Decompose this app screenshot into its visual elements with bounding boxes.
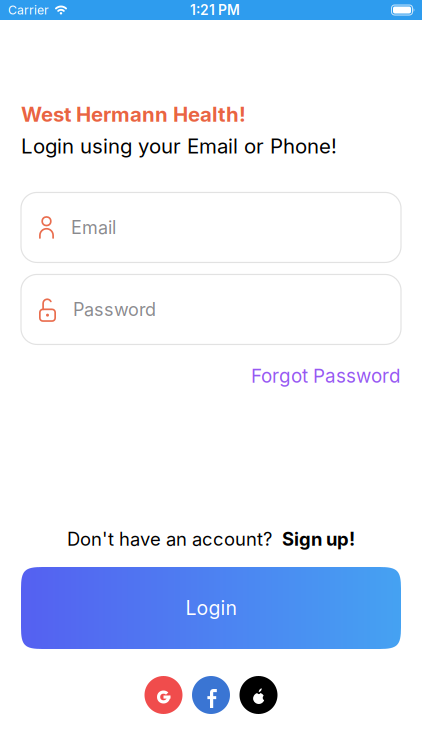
button[interactable]: Don't have an account? Sign up!	[67, 528, 355, 550]
staticText: West Hermann Health!	[21, 102, 246, 127]
staticText: Carrier	[8, 3, 49, 17]
button[interactable]: Login	[21, 567, 401, 649]
button[interactable]: Sign in with Apple	[239, 676, 277, 714]
staticText: Don't have an account? Sign up!	[67, 528, 355, 550]
button[interactable]: Email	[21, 192, 401, 262]
staticText: Email	[71, 217, 116, 238]
button[interactable]: Sign in with Facebook	[192, 676, 230, 714]
button[interactable]: Forgot Password	[251, 364, 401, 387]
staticText: 1:21 PM	[190, 2, 240, 18]
staticText: Login	[185, 596, 236, 620]
staticText: Password	[73, 299, 156, 320]
staticText: Forgot Password	[251, 364, 401, 387]
staticText: Login using your Email or Phone!	[21, 134, 337, 158]
button[interactable]: Password	[21, 274, 401, 344]
button[interactable]: Sign in with Google	[144, 676, 182, 714]
